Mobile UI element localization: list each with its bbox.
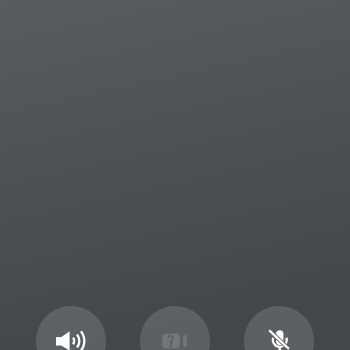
button[interactable]: Camera: [140, 306, 210, 350]
button[interactable]: Speaker: [36, 306, 106, 350]
button[interactable]: Mute: [244, 306, 314, 350]
